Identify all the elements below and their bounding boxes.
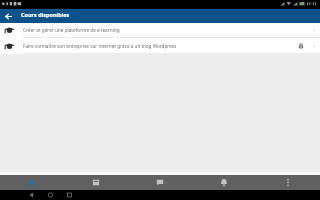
staticText: Faire connaître son entreprise sur inter… <box>23 43 297 49</box>
button[interactable]: Messages <box>128 175 192 190</box>
button[interactable]: Home <box>41 190 60 200</box>
staticText: Cours disponibles <box>21 11 70 18</box>
button[interactable]: Créer et gérer une plateforme de e-learn… <box>0 23 320 37</box>
button[interactable]: Recent apps <box>60 190 79 200</box>
button[interactable]: Faire connaître son entreprise sur inter… <box>0 38 320 53</box>
button[interactable]: Back <box>0 9 21 23</box>
button[interactable]: Home <box>0 175 64 190</box>
button[interactable]: Notifications <box>192 175 256 190</box>
staticText: Créer et gérer une plateforme de e-learn… <box>23 27 311 33</box>
button[interactable]: More options <box>256 175 320 190</box>
button[interactable]: Back <box>22 190 41 200</box>
button[interactable]: Courses <box>64 175 128 190</box>
